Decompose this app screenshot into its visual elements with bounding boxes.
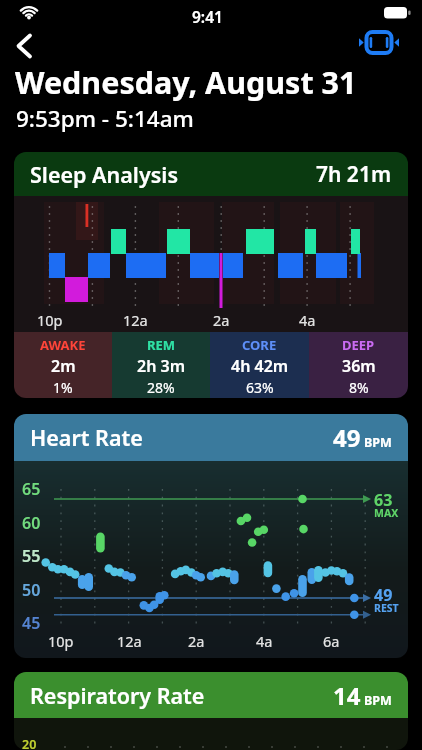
staticText: Heart Rate [30,423,143,452]
staticText: 63 [374,489,393,511]
staticText: DEEP [342,336,375,354]
button[interactable]: AWAKE [14,332,112,398]
staticText: REM [147,336,176,354]
staticText: 20 [22,736,37,750]
staticText: 1% [53,378,73,397]
staticText: REST [374,601,399,615]
staticText: 49 [374,584,393,606]
staticText: 10p [48,631,74,651]
staticText: CORE [242,336,277,354]
staticText: 4h 42m [231,355,289,377]
staticText: Wednesday, August 31 [15,61,357,103]
button[interactable]: CORE [210,332,309,398]
staticText: Respiratory Rate [30,681,205,710]
staticText: 4a [299,310,316,330]
button[interactable]: Respiratory Rate [14,672,408,718]
staticText: 8% [349,378,369,397]
button[interactable] [355,27,401,58]
staticText: 2h 3m [137,355,186,377]
staticText: 55 [22,545,41,567]
staticText: 12a [123,310,148,330]
staticText: MAX [374,506,399,520]
button[interactable] [4,28,44,64]
staticText: 2m [51,355,76,377]
staticText: 45 [22,612,41,634]
staticText: 9:41 [192,6,223,27]
button[interactable]: DEEP [309,332,408,398]
staticText: BPM [364,692,392,709]
staticText: 2a [188,631,205,651]
staticText: AWAKE [40,336,86,354]
staticText: BPM [364,434,392,451]
staticText: 50 [22,579,41,601]
button[interactable]: Sleep Analysis [14,152,408,196]
button[interactable]: Heart Rate [14,414,408,461]
staticText: 60 [22,512,41,534]
staticText: 2a [213,310,230,330]
staticText: 4a [256,631,273,651]
button[interactable]: REM [112,332,210,398]
staticText: 49 [333,421,361,454]
staticText: 14 [333,679,361,712]
staticText: 63% [246,378,274,397]
staticText: 65 [22,478,41,500]
staticText: Sleep Analysis [30,160,179,189]
staticText: 36m [342,355,376,377]
staticText: 7h 21m [316,160,392,189]
staticText: 28% [147,378,175,397]
staticText: 9:53pm - 5:14am [16,103,194,134]
staticText: 6a [323,631,340,651]
staticText: 12a [117,631,142,651]
staticText: 10p [37,310,63,330]
